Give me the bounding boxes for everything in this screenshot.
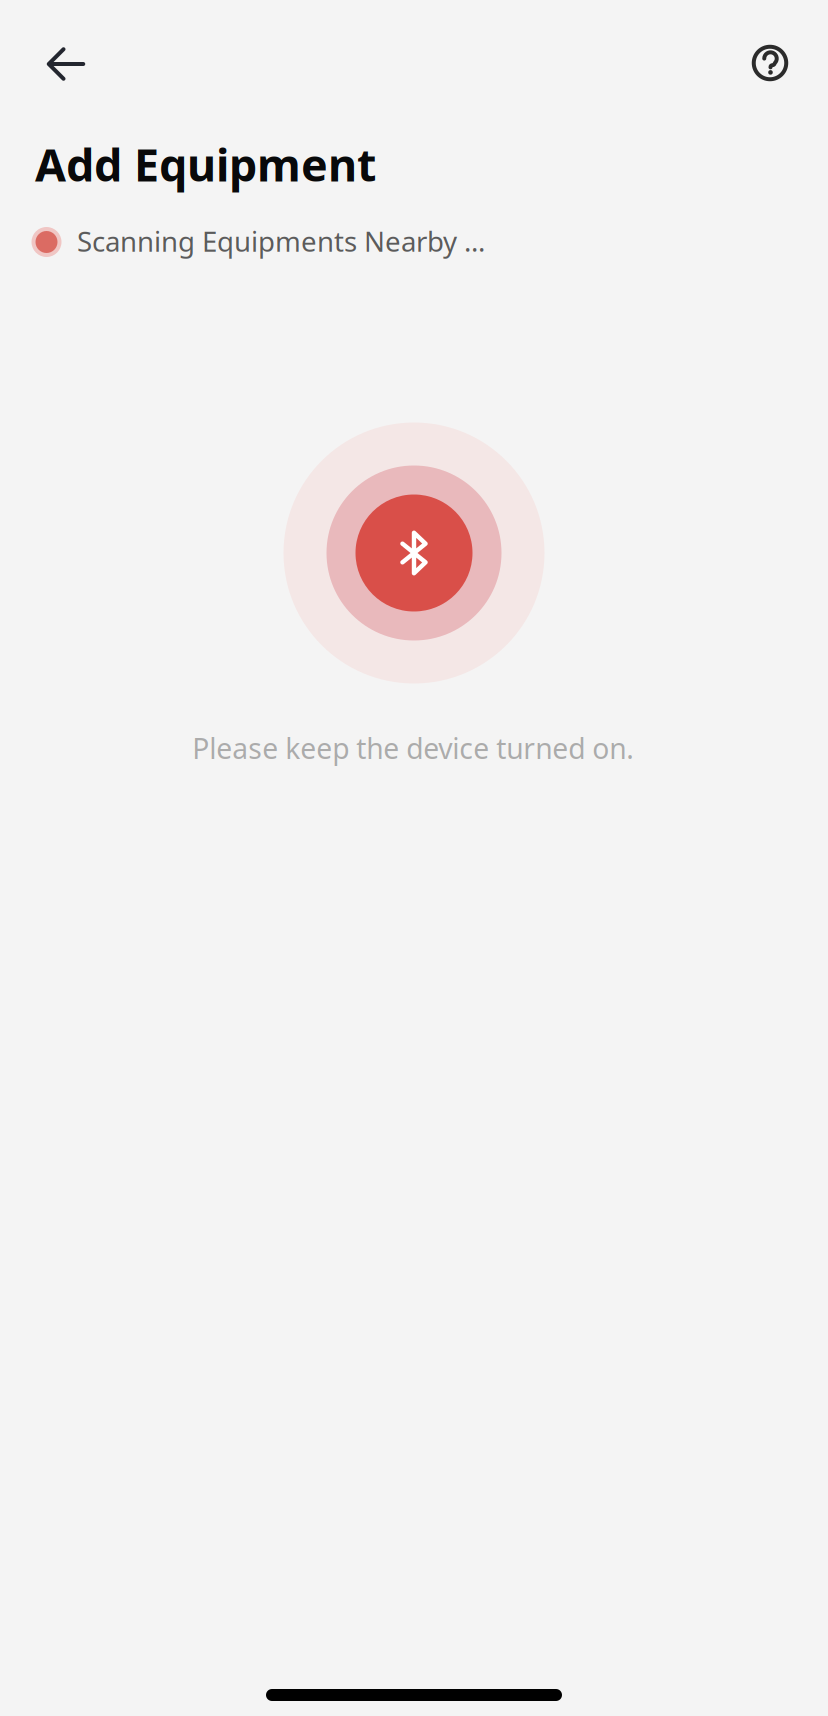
staticText: Please keep the device turned on. bbox=[192, 729, 634, 767]
staticText: Scanning Equipments Nearby ... bbox=[77, 222, 485, 260]
button[interactable]: Back bbox=[21, 19, 111, 109]
button[interactable]: Help bbox=[730, 23, 810, 103]
staticText: Add Equipment bbox=[35, 133, 376, 194]
